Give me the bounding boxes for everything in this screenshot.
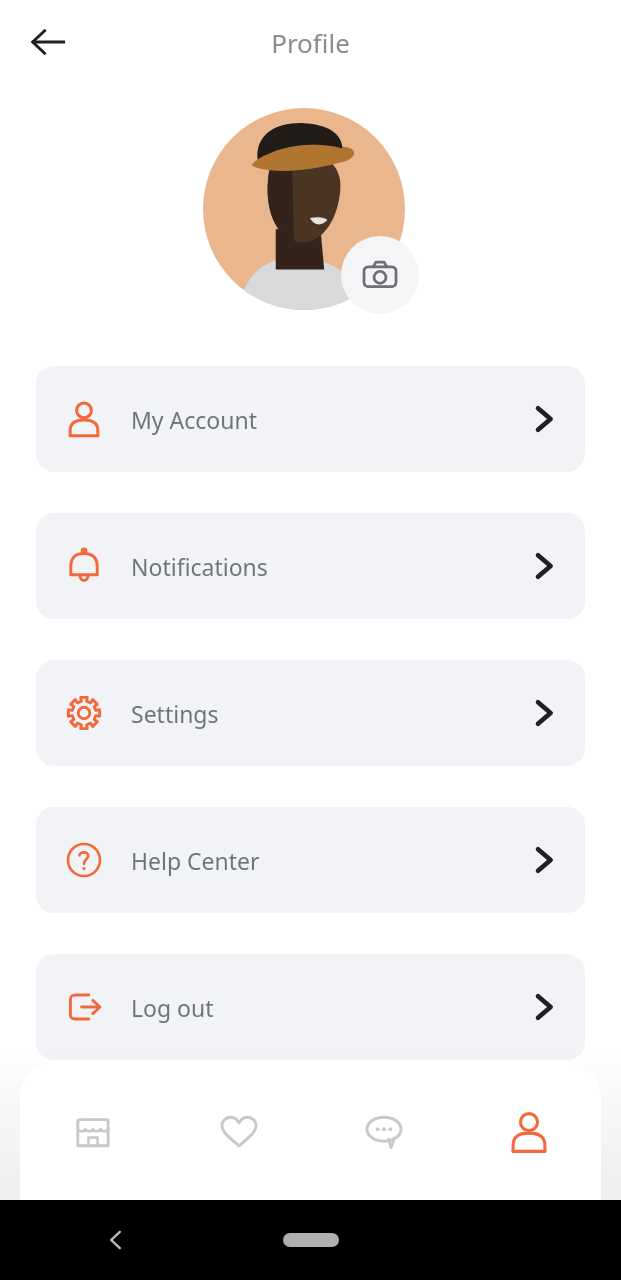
button[interactable]: Profile photo	[203, 108, 405, 310]
button[interactable]: Profile	[456, 1063, 601, 1200]
staticText: Notifications	[131, 551, 268, 582]
button[interactable]: Change photo	[341, 236, 419, 314]
button[interactable]: Back	[16, 10, 80, 74]
button[interactable]: System back	[92, 1216, 140, 1264]
staticText: My Account	[131, 404, 257, 435]
staticText: Help Center	[131, 845, 260, 876]
button[interactable]: Home	[283, 1233, 339, 1247]
button[interactable]: Help Center	[36, 807, 585, 913]
staticText: Log out	[131, 992, 214, 1023]
button[interactable]: Notifications	[36, 513, 585, 619]
button[interactable]: Favorites	[166, 1063, 311, 1200]
button[interactable]: Messages	[311, 1063, 456, 1200]
button[interactable]: My Account	[36, 366, 585, 472]
staticText: Profile	[271, 25, 350, 60]
staticText: Settings	[131, 698, 219, 729]
button[interactable]: Shop	[20, 1063, 166, 1200]
button[interactable]: Settings	[36, 660, 585, 766]
button[interactable]: Log out	[36, 954, 585, 1060]
